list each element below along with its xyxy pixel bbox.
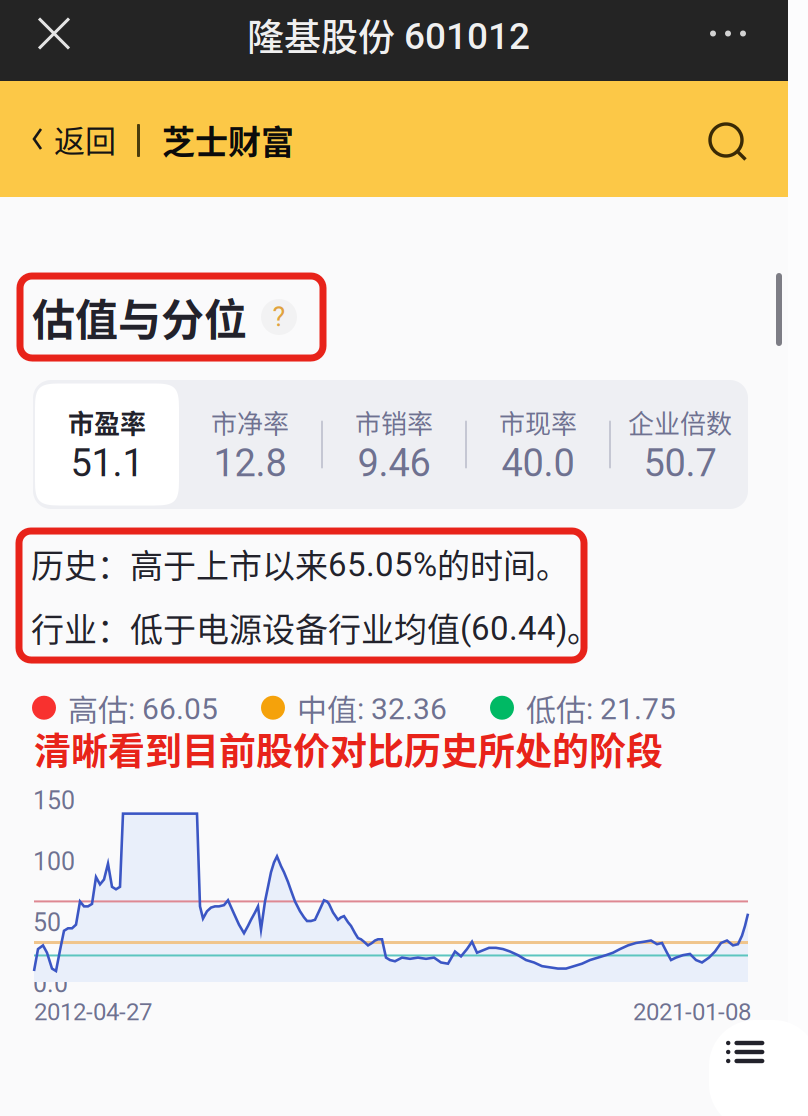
staticText: 2021-01-08 xyxy=(633,998,751,1026)
staticText: 企业倍数 xyxy=(628,403,732,441)
button[interactable]: Close xyxy=(9,0,99,81)
staticText: 市销率 xyxy=(355,403,433,441)
staticText: 40.0 xyxy=(501,441,574,486)
staticText: 市现率 xyxy=(499,403,577,441)
button[interactable]: 返回 xyxy=(0,81,132,197)
staticText: 芝士财富 xyxy=(162,116,294,164)
staticText: 0.0 xyxy=(33,969,68,998)
staticText: 高估: 66.05 xyxy=(68,686,218,729)
staticText: 50.7 xyxy=(643,441,716,486)
staticText: 估值与分位 xyxy=(32,286,247,348)
staticText: 12.8 xyxy=(213,441,286,486)
staticText: 150 xyxy=(33,786,75,815)
button[interactable]: Search xyxy=(676,81,780,197)
staticText: 100 xyxy=(33,847,75,876)
staticText: 51.1 xyxy=(70,441,143,486)
staticText: 历史：高于上市以来65.05%的时间。 xyxy=(31,540,569,587)
button[interactable]: More xyxy=(683,0,773,81)
staticText: 9.46 xyxy=(357,441,430,486)
staticText: 行业：低于电源设备行业均值(60.44)。 xyxy=(31,603,600,651)
staticText: ? xyxy=(272,301,285,333)
staticText: 返回 xyxy=(54,117,116,161)
staticText: 低估: 21.75 xyxy=(526,686,676,729)
button[interactable]: List xyxy=(709,1020,808,1116)
staticText: 隆基股份 601012 xyxy=(247,8,530,62)
staticText: 市净率 xyxy=(211,403,289,441)
staticText: 2012-04-27 xyxy=(34,998,152,1026)
staticText: 50 xyxy=(33,908,61,937)
staticText: 清晰看到目前股价对比历史所处的阶段 xyxy=(34,722,663,776)
staticText: 市盈率 xyxy=(68,403,146,441)
staticText: 中值: 32.36 xyxy=(297,686,447,729)
